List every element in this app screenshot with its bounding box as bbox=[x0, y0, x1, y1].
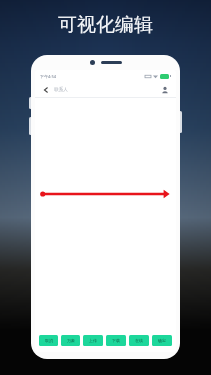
button[interactable]: 账户 bbox=[159, 84, 171, 96]
staticText: 下载 bbox=[112, 338, 120, 343]
button[interactable]: 万象 bbox=[61, 335, 80, 346]
button[interactable]: 返回 bbox=[40, 84, 51, 95]
staticText: 上传 bbox=[89, 338, 97, 343]
button[interactable]: 确定 bbox=[152, 335, 172, 346]
staticText: 万象 bbox=[67, 338, 75, 343]
button[interactable]: 上传 bbox=[83, 335, 103, 346]
staticText: 联系人 bbox=[54, 87, 68, 93]
staticText: 可视化编辑 bbox=[58, 13, 153, 37]
staticText: 确定 bbox=[158, 338, 166, 343]
button[interactable]: 取消 bbox=[39, 335, 58, 346]
button[interactable]: 下载 bbox=[106, 335, 126, 346]
staticText: 下午4:54 bbox=[40, 74, 56, 79]
staticText: 取消 bbox=[45, 338, 53, 343]
staticText: 在线 bbox=[135, 338, 143, 343]
button[interactable]: 在线 bbox=[129, 335, 149, 346]
